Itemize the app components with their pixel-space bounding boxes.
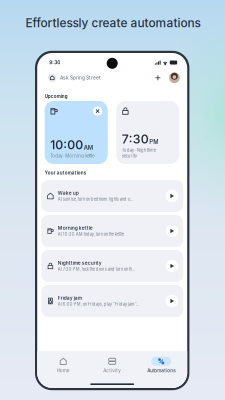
staticText: 7:30	[122, 131, 149, 146]
button[interactable]: Add	[152, 70, 164, 85]
staticText: Upcoming	[45, 93, 68, 99]
staticText: Wake up	[58, 190, 79, 196]
staticText: At 6:00 PM, on Fridays, play “Friday jam…	[58, 302, 140, 307]
button[interactable]: Wake up	[41, 180, 183, 212]
button[interactable]: 7:30	[116, 101, 179, 164]
staticText: Effortlessly create automations	[25, 16, 200, 30]
staticText: AM	[84, 144, 93, 151]
staticText: security	[122, 153, 137, 158]
button[interactable]: Nighttime security	[41, 250, 183, 282]
staticText: At 7:30 PM, lock the doors and turn on t…	[58, 267, 136, 272]
staticText: Automations	[147, 368, 175, 373]
staticText: 10:00	[50, 137, 83, 152]
button[interactable]: Ask Spring Street	[45, 70, 147, 85]
staticText: PM	[149, 138, 158, 145]
button[interactable]: Friday jam	[41, 285, 183, 317]
staticText: Morning kettle	[58, 225, 93, 231]
staticText: Your automations	[45, 170, 86, 175]
staticText: Friday jam	[58, 295, 82, 301]
button[interactable]: Morning kettle	[41, 215, 183, 247]
staticText: Home	[57, 368, 70, 373]
staticText: Today · Nighttime	[122, 148, 156, 153]
staticText: At 10:30 AM today, turn on the kettle	[58, 232, 124, 237]
button[interactable]: 10:00	[45, 101, 108, 164]
staticText: Nighttime security	[58, 260, 102, 266]
button[interactable]: Automations	[137, 356, 185, 374]
button[interactable]: Activity	[88, 356, 136, 374]
staticText: 9:30	[49, 60, 60, 65]
button[interactable]: Home	[39, 356, 87, 374]
staticText: At sunrise, turn on bedroom lights and o…	[58, 197, 134, 202]
button[interactable]: Profile	[169, 70, 180, 85]
staticText: Ask Spring Street	[60, 75, 101, 81]
staticText: Activity	[103, 368, 121, 373]
staticText: Today · Morning kettle	[50, 153, 94, 158]
